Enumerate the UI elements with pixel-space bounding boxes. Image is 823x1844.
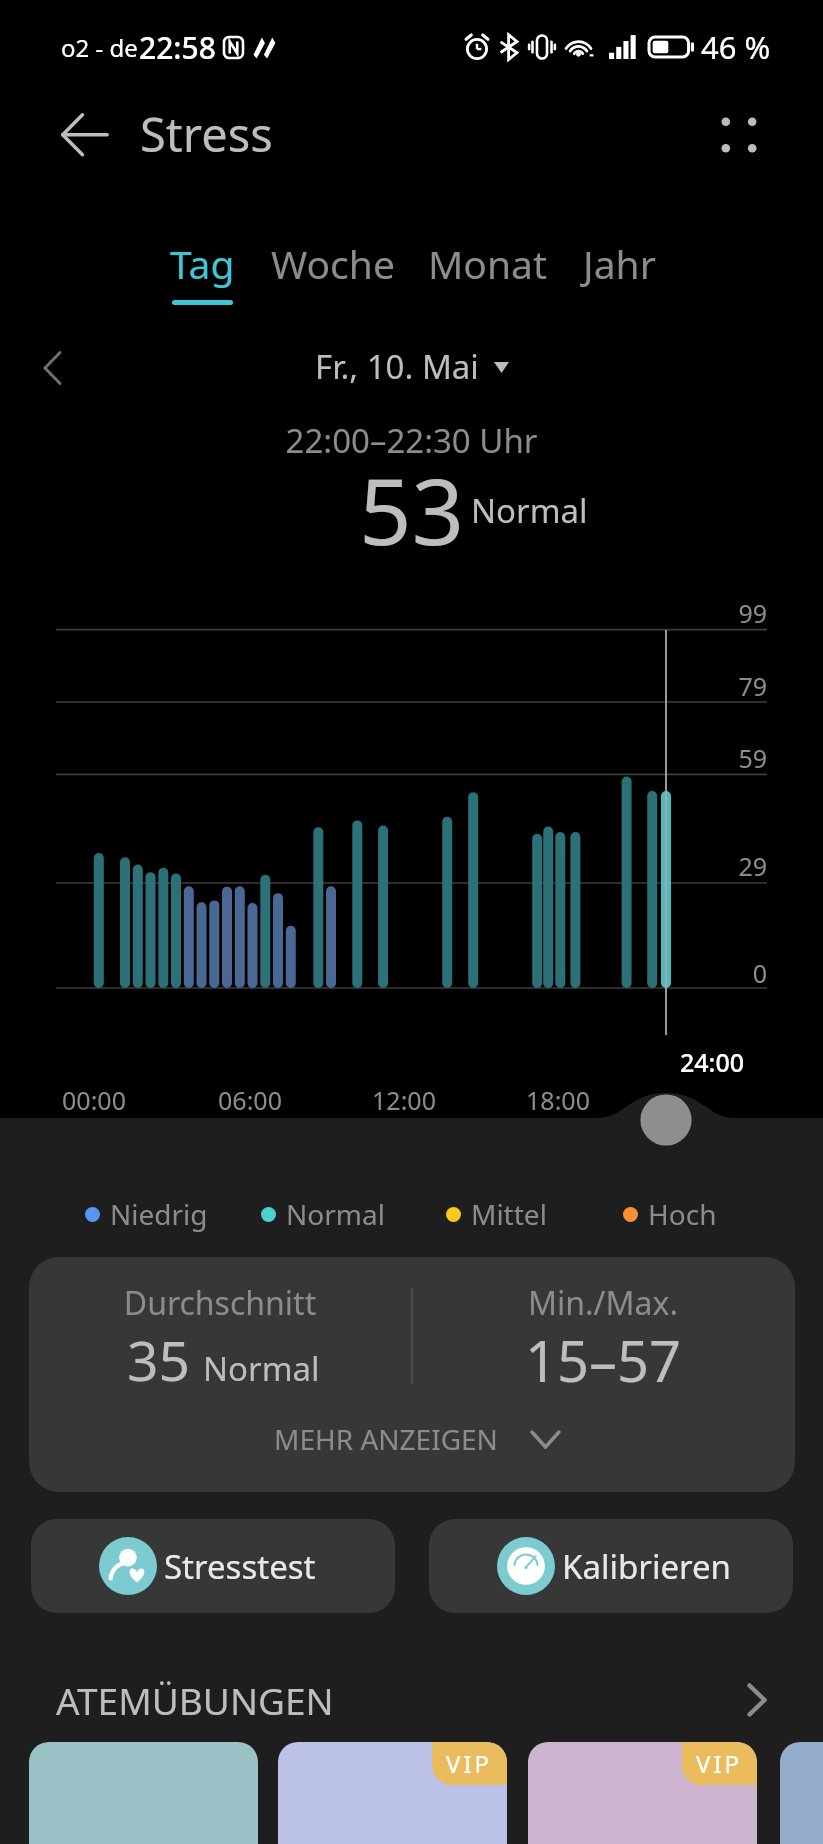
staticText: 0 xyxy=(667,956,767,990)
staticText: 00:00 xyxy=(14,1083,174,1117)
staticText: 06:00 xyxy=(170,1083,330,1117)
button[interactable]: Jahr xyxy=(580,237,659,305)
staticText: Stress xyxy=(140,102,273,166)
button[interactable] xyxy=(780,1742,823,1844)
staticText: 99 xyxy=(667,596,767,630)
button[interactable]: Durchschnitt xyxy=(29,1257,795,1492)
staticText: 53 xyxy=(0,447,823,572)
button[interactable]: Previous day xyxy=(28,343,78,393)
staticText: Kalibrieren xyxy=(562,1544,731,1589)
button[interactable]: MEHR ANZEIGEN xyxy=(274,1420,561,1458)
staticText: 22:58 xyxy=(139,27,216,68)
staticText: VIP xyxy=(696,1747,743,1780)
button[interactable]: VIP xyxy=(528,1742,757,1844)
staticText: Stresstest xyxy=(164,1544,316,1589)
button[interactable]: Normal xyxy=(261,1195,385,1233)
staticText: Niedrig xyxy=(110,1195,208,1233)
staticText: 59 xyxy=(667,741,767,775)
staticText: Hoch xyxy=(648,1195,717,1233)
button[interactable]: Tag xyxy=(167,237,238,305)
staticText: Normal xyxy=(286,1195,385,1233)
button[interactable]: VIP xyxy=(278,1742,507,1844)
button[interactable] xyxy=(29,1742,258,1844)
staticText: 24:00 xyxy=(632,1045,792,1079)
staticText: Normal xyxy=(203,1346,320,1391)
staticText: Normal xyxy=(471,488,588,533)
button[interactable]: Fr., 10. Mai xyxy=(315,344,509,389)
button[interactable]: Hoch xyxy=(623,1195,717,1233)
button[interactable]: Woche xyxy=(268,237,398,305)
staticText: Woche xyxy=(271,237,395,290)
button[interactable]: Mittel xyxy=(446,1195,547,1233)
button[interactable]: Stresstest xyxy=(31,1519,395,1613)
staticText: VIP xyxy=(446,1747,493,1780)
button[interactable]: Monat xyxy=(425,237,551,305)
staticText: ATEMÜBUNGEN xyxy=(56,1675,334,1725)
staticText: 46 % xyxy=(701,26,771,68)
button[interactable]: Back xyxy=(53,107,115,163)
staticText: Jahr xyxy=(583,237,656,290)
staticText: 79 xyxy=(667,669,767,703)
staticText: Fr., 10. Mai xyxy=(315,344,479,389)
staticText: Tag xyxy=(170,237,235,290)
staticText: o2 - de xyxy=(61,31,138,64)
button[interactable]: More options xyxy=(708,104,770,166)
staticText: 18:00 xyxy=(478,1083,638,1117)
staticText: Durchschnitt xyxy=(29,1281,411,1325)
staticText: Min./Max. xyxy=(412,1281,794,1325)
button[interactable]: Niedrig xyxy=(85,1195,208,1233)
staticText: Monat xyxy=(428,237,548,290)
staticText: 22:00–22:30 Uhr xyxy=(0,418,823,463)
staticText: MEHR ANZEIGEN xyxy=(274,1420,498,1458)
button[interactable]: Kalibrieren xyxy=(429,1519,793,1613)
staticText: 12:00 xyxy=(324,1083,484,1117)
staticText: 29 xyxy=(667,849,767,883)
button[interactable]: ATEMÜBUNGEN xyxy=(56,1675,767,1725)
staticText: Mittel xyxy=(471,1195,547,1233)
staticText: 35 xyxy=(127,1322,190,1397)
staticText: 15–57 xyxy=(412,1322,794,1398)
